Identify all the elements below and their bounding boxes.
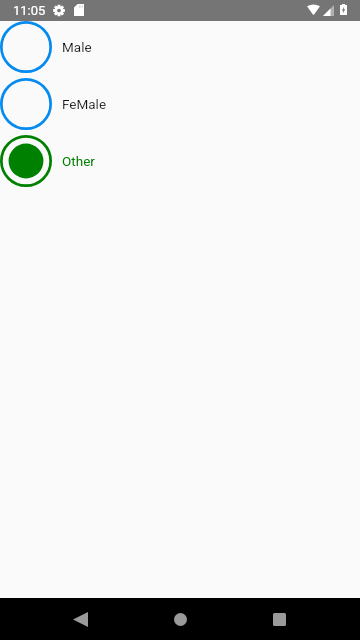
staticText: 11:05 [13, 3, 46, 18]
button[interactable]: Home [156, 598, 204, 640]
button[interactable]: Other [0, 135, 360, 192]
staticText: Other [62, 153, 95, 169]
button[interactable]: Recent apps [255, 598, 303, 640]
button[interactable]: Male [0, 21, 360, 78]
staticText: Male [62, 39, 92, 55]
staticText: FeMale [62, 96, 107, 112]
button[interactable]: FeMale [0, 78, 360, 135]
button[interactable]: Back [56, 598, 104, 640]
